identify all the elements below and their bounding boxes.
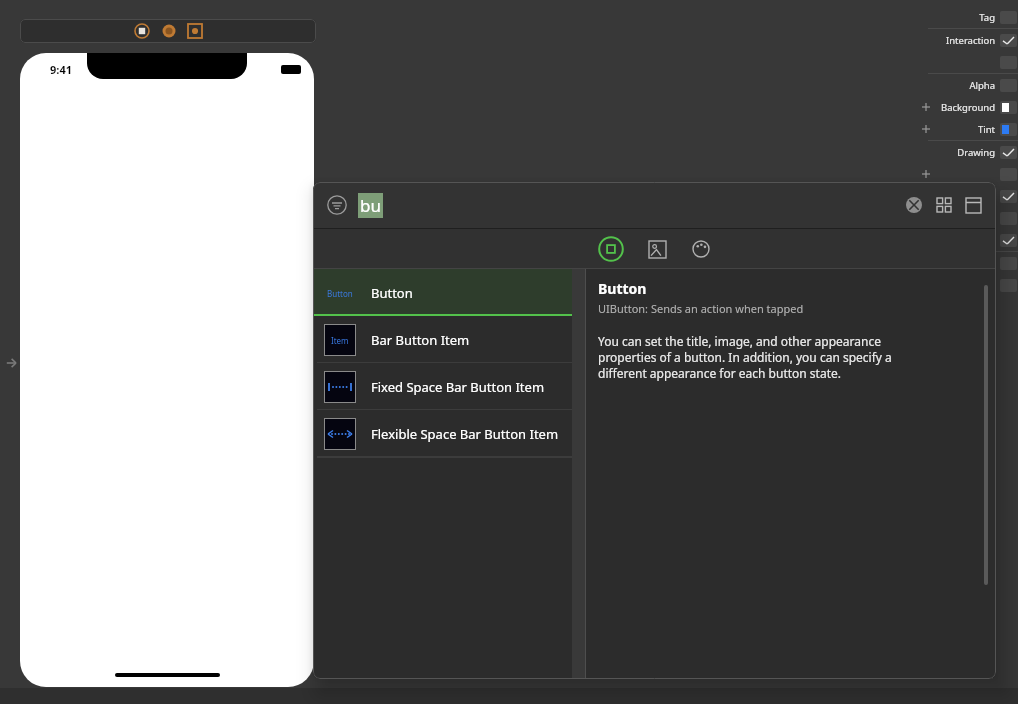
button[interactable]: Tag — [920, 6, 1018, 28]
staticText: Flexible Space Bar Button Item — [371, 425, 559, 443]
button[interactable]: g — [920, 252, 1018, 274]
staticText: Button — [598, 279, 647, 298]
staticText: Bar Button Item — [371, 331, 470, 349]
button[interactable]: Drawing — [920, 141, 1018, 163]
button[interactable]: Alpha — [920, 74, 1018, 96]
button[interactable]: Objects — [598, 236, 624, 262]
button[interactable]: Item — [313, 316, 572, 363]
button[interactable]: Clear search — [904, 195, 924, 215]
button[interactable]: Button — [313, 269, 572, 316]
staticText: Fixed Space Bar Button Item — [371, 378, 545, 396]
staticText: Drawing — [957, 146, 995, 159]
button[interactable]: Tint — [920, 118, 1018, 140]
button[interactable]: Media — [646, 238, 668, 260]
button[interactable] — [920, 207, 1018, 229]
staticText: g — [989, 257, 995, 270]
button[interactable]: Background — [920, 96, 1018, 118]
button[interactable]: Expand navigator — [0, 352, 22, 374]
staticText: 9:41 — [50, 62, 72, 77]
staticText: Item — [331, 335, 349, 346]
button[interactable] — [920, 229, 1018, 251]
button[interactable]: Flexible Space Bar Button Item — [313, 410, 572, 457]
staticText: Button — [371, 284, 413, 302]
staticText: Interaction — [945, 34, 995, 47]
button[interactable]: Orientation — [162, 24, 176, 38]
button[interactable] — [920, 185, 1018, 207]
staticText: UIButton: Sends an action when tapped — [598, 301, 804, 316]
button[interactable]: Device — [134, 23, 150, 39]
button[interactable]: Interaction — [920, 29, 1018, 51]
button[interactable] — [920, 274, 1018, 296]
button[interactable]: Grid view — [935, 196, 953, 214]
staticText: Tint — [977, 123, 995, 136]
staticText: You can set the title, image, and other … — [598, 333, 920, 381]
staticText: Tag — [979, 11, 995, 24]
button[interactable]: Fixed Space Bar Button Item — [313, 363, 572, 410]
button[interactable] — [920, 163, 1018, 185]
button[interactable]: List view — [964, 196, 982, 214]
button[interactable]: Appearance — [188, 24, 202, 38]
staticText: Alpha — [969, 79, 995, 92]
button[interactable] — [920, 51, 1018, 73]
staticText: Background — [940, 101, 995, 114]
staticText: bu — [360, 194, 381, 217]
button[interactable]: Filter — [327, 195, 347, 215]
button[interactable]: Colors — [690, 238, 712, 260]
staticText: Button — [327, 288, 353, 299]
